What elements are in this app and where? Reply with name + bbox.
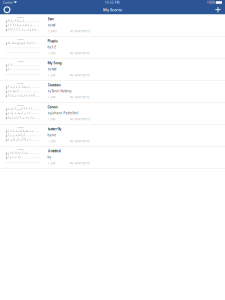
staticText: by S.E	[47, 45, 56, 49]
staticText: My Scores	[103, 7, 122, 12]
staticText: by cvsd	[47, 67, 56, 71]
staticText: No movements	[69, 51, 89, 55]
staticText: 3 parts	[47, 29, 56, 33]
staticText: Carrier	[3, 0, 13, 4]
staticText: No movements	[69, 117, 89, 121]
button[interactable]: Settings	[1, 5, 13, 14]
staticText: by me	[47, 133, 56, 137]
button[interactable]: Canon	[0, 102, 225, 124]
staticText: 1 part	[47, 161, 55, 165]
staticText: Croatian	[47, 82, 60, 87]
staticText: 1 part	[47, 139, 55, 143]
button[interactable]: Croatian	[0, 80, 225, 102]
staticText: No movements	[69, 161, 89, 165]
staticText: by cvd	[47, 23, 55, 27]
staticText: 1 part	[47, 73, 55, 77]
staticText: 1 part	[47, 117, 55, 121]
staticText: by	[47, 155, 50, 159]
staticText: butterfly	[47, 126, 61, 131]
staticText: Piupiu	[47, 38, 57, 43]
button[interactable]: Piupiu	[0, 36, 225, 58]
staticText: My Song	[47, 60, 61, 65]
staticText: 1 part	[47, 95, 55, 99]
staticText: Canon	[47, 104, 57, 109]
button[interactable]: Untitled	[0, 146, 225, 168]
staticText: 100%	[207, 0, 215, 4]
button[interactable]: My Song	[0, 58, 225, 80]
button[interactable]: Star	[0, 14, 225, 36]
button[interactable]: Add	[212, 5, 224, 14]
button[interactable]: butterfly	[0, 124, 225, 146]
staticText: by Johann Pachelbel	[47, 111, 78, 115]
staticText: Untitled	[47, 148, 60, 153]
staticText: Star	[47, 16, 54, 21]
staticText: by Tanin Hutting	[47, 89, 71, 93]
staticText: No movements	[69, 29, 89, 33]
staticText: 1 part	[47, 51, 55, 55]
staticText: No movements	[69, 139, 89, 143]
staticText: No movements	[69, 95, 89, 99]
staticText: No movements	[69, 73, 89, 77]
staticText: 10:33 PM	[105, 0, 120, 4]
